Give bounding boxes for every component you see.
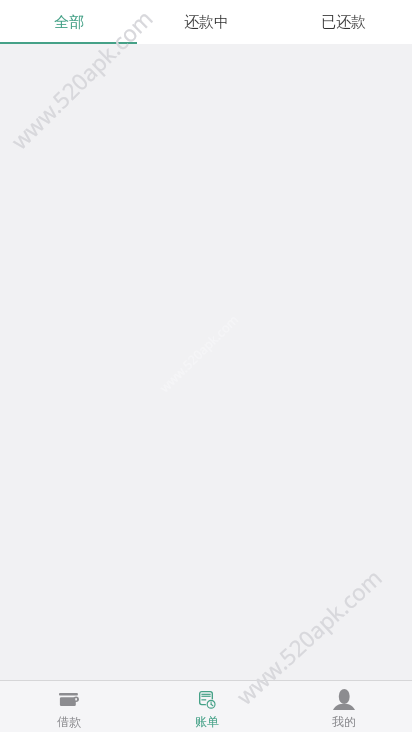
- button[interactable]: 借款: [0, 681, 138, 732]
- button[interactable]: 还款中: [138, 0, 275, 44]
- button[interactable]: 全部: [0, 0, 138, 44]
- staticText: 还款中: [184, 13, 229, 32]
- staticText: 账单: [195, 714, 219, 729]
- other: 我的: [333, 689, 355, 710]
- button[interactable]: 我的: [275, 681, 412, 732]
- staticText: 全部: [54, 13, 84, 32]
- button[interactable]: 已还款: [275, 0, 412, 44]
- staticText: 已还款: [321, 13, 366, 32]
- staticText: 借款: [57, 714, 81, 729]
- other: 账单: [199, 691, 215, 708]
- other: 借款: [59, 693, 79, 706]
- button[interactable]: 账单: [138, 681, 275, 732]
- staticText: 我的: [332, 714, 356, 729]
